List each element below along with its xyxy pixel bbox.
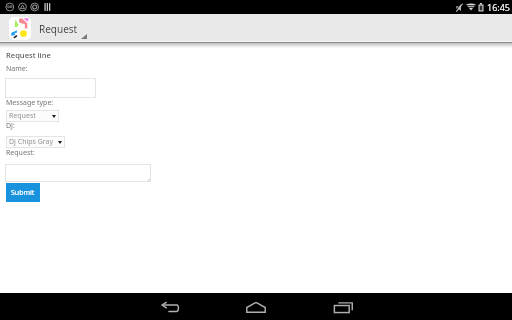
staticText: Request [39,22,78,36]
staticText: Request: [6,148,35,158]
button[interactable]: Request [39,14,121,43]
button[interactable] [5,164,151,182]
staticText: DJ: [6,121,15,131]
staticText: 16:45 [487,1,511,13]
button[interactable]: Back [150,294,190,320]
button[interactable] [5,78,96,98]
staticText: Dj Chips Gray [9,137,54,147]
button[interactable]: Dj Chips Gray [6,136,65,148]
staticText: Message type: [6,98,54,108]
staticText: Submit [11,188,35,198]
staticText: Name: [6,64,28,74]
button[interactable]: Request [6,110,59,122]
button[interactable]: App icon [9,17,31,40]
button[interactable]: Home [236,294,276,320]
staticText: Request line [6,50,51,60]
staticText: Request [9,111,36,121]
button[interactable]: Submit [6,183,40,202]
button[interactable]: Recent apps [323,294,363,320]
